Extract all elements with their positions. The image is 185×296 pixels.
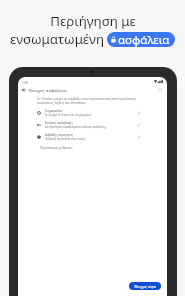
- staticText: Το Google Chrome είναι ενημερωμένο: [45, 113, 92, 117]
- staticText: Ενημερώσεις: [45, 109, 63, 113]
- staticText: Έλεγχος ασφάλειας: [28, 87, 68, 93]
- staticText: Το Chrome μπορεί να συμβάλει στην προστα…: [37, 97, 141, 105]
- button[interactable]: Περισσότερες ρυθμίσεις: [40, 146, 73, 150]
- staticText: Περιήγηση με: [50, 12, 136, 30]
- button[interactable]: Help: [156, 86, 164, 94]
- staticText: Κωδικοί πρόσβασης: [45, 121, 73, 125]
- button[interactable]: Κωδικοί πρόσβασης: [37, 119, 141, 131]
- staticText: Η βασική προστασία είναι ενεργή: [45, 137, 86, 141]
- staticText: ασφάλεια: [118, 32, 170, 47]
- staticText: Έλεγχος τώρα: [134, 284, 156, 288]
- staticText: 1:30: [22, 81, 28, 85]
- staticText: ενσωματωμένη: [10, 30, 104, 48]
- staticText: Δεν βρέθηκαν παραβιασμένοι κωδικοί πρόσβ…: [45, 125, 106, 129]
- button[interactable]: Back: [20, 86, 27, 93]
- staticText: Ασφαλής περιήγηση: [45, 133, 73, 137]
- button[interactable]: Έλεγχος τώρα: [129, 282, 161, 290]
- button[interactable]: Ενημερώσεις: [37, 107, 141, 119]
- button[interactable]: Ασφαλής περιήγηση: [37, 131, 141, 143]
